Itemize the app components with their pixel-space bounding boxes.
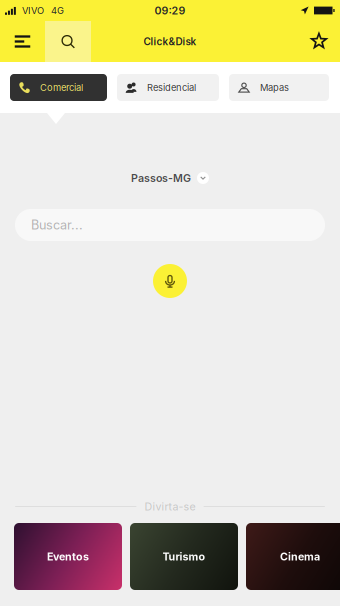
- staticText: Cinema: [280, 550, 320, 563]
- staticText: Buscar...: [31, 217, 83, 233]
- staticText: VIVO: [22, 5, 44, 16]
- button[interactable]: Eventos: [14, 523, 122, 590]
- staticText: 09:29: [154, 4, 185, 17]
- button[interactable]: Buscar: [45, 21, 91, 62]
- staticText: 4G: [51, 5, 64, 16]
- staticText: Turismo: [162, 550, 205, 563]
- staticText: Divirta-se: [144, 500, 195, 513]
- button[interactable]: Cinema: [246, 523, 340, 590]
- button[interactable]: Residencial: [117, 74, 219, 101]
- button[interactable]: Comercial: [10, 74, 107, 101]
- staticText: Mapas: [260, 82, 289, 93]
- button[interactable]: Busca por voz: [153, 264, 187, 298]
- staticText: Passos-MG: [131, 171, 191, 184]
- button[interactable]: Buscar...: [15, 209, 325, 241]
- button[interactable]: Turismo: [130, 523, 238, 590]
- staticText: Eventos: [47, 550, 89, 563]
- button[interactable]: Trocar cidade: [197, 172, 209, 184]
- button[interactable]: Mapas: [229, 74, 329, 101]
- button[interactable]: Favoritos: [298, 21, 340, 62]
- staticText: Residencial: [147, 82, 196, 93]
- button[interactable]: Menu: [0, 21, 45, 62]
- staticText: Comercial: [40, 82, 83, 93]
- staticText: Click&Disk: [143, 35, 196, 48]
